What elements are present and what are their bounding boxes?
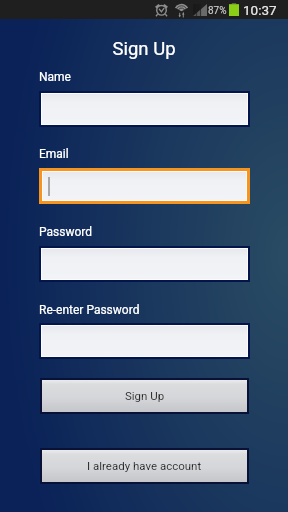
button[interactable]: I already have account [42,450,247,482]
staticText: Re-enter Password [39,303,140,317]
staticText: Name [39,70,71,84]
staticText: Sign Up [125,389,165,402]
staticText: 87% [208,5,227,17]
staticText: Password [39,225,93,239]
staticText: I already have account [87,459,202,472]
button[interactable]: Sign Up [42,380,247,412]
staticText: Sign Up [0,38,288,60]
staticText: 10:37 [243,2,277,18]
staticText: Email [39,147,69,161]
button[interactable] [43,172,246,200]
